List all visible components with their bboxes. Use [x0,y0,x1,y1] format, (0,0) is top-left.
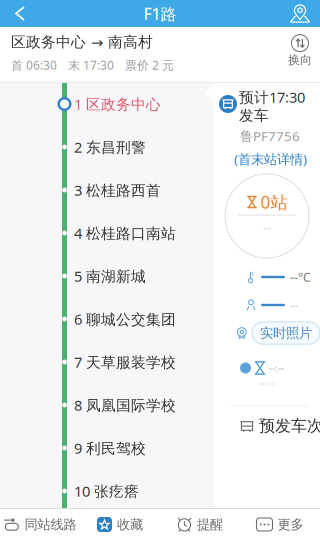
button[interactable]: 8 凤凰国际学校 [74,383,214,426]
staticText: 票价 2 元 [125,57,174,73]
button[interactable]: (首末站详情) [232,148,309,170]
staticText: 预发车次 [259,416,320,436]
staticText: F1路 [143,3,176,24]
button[interactable]: 5 南湖新城 [74,254,214,297]
staticText: 9 利民驾校 [74,438,146,458]
staticText: 末 17:30 [68,57,114,73]
button[interactable]: 9 利民驾校 [74,426,214,469]
staticText: --°C [290,269,311,285]
staticText: --:-- [269,362,284,374]
staticText: 更多 [277,516,303,533]
button[interactable]: 收藏 [80,508,160,541]
staticText: 2 东昌刑警 [74,137,146,157]
button[interactable]: 预发车次 [237,412,320,440]
staticText: 首 06:30 [11,57,57,73]
staticText: (首末站详情) [234,150,307,168]
button[interactable]: 6 聊城公交集团 [74,297,214,340]
button[interactable]: 4 松桂路口南站 [74,211,214,254]
staticText: 换向 [288,53,312,67]
staticText: -- [263,219,271,235]
button[interactable]: 10 张疙瘩 [74,469,214,512]
staticText: 提醒 [197,516,223,533]
staticText: 7 天草服装学校 [74,352,176,372]
button[interactable]: 实时照片 [252,322,320,344]
button[interactable]: 返回 [0,0,40,27]
staticText: 5 南湖新城 [74,266,146,286]
staticText: -- [290,297,298,313]
staticText: 区政务中心 → 南高村 [11,33,153,51]
staticText: --:-- [259,377,274,389]
staticText: 1 区政务中心 [74,94,161,114]
staticText: 收藏 [117,516,143,533]
button[interactable]: 7 天草服装学校 [74,340,214,383]
button[interactable]: 更多 [240,508,320,541]
staticText: 0站 [260,190,287,213]
staticText: 鲁PF7756 [240,127,300,145]
staticText: 预计17:30发车 [239,87,305,125]
button[interactable]: 提醒 [160,508,240,541]
staticText: 10 张疙瘩 [74,481,139,501]
button[interactable]: 换向 [278,33,320,69]
staticText: 实时照片 [260,325,312,341]
staticText: 3 松桂路西首 [74,180,161,200]
button[interactable]: 1 区政务中心 [74,82,214,125]
staticText: 4 松桂路口南站 [74,223,176,243]
staticText: 同站线路 [24,516,76,533]
staticText: 8 凤凰国际学校 [74,395,176,415]
button[interactable]: 2 东昌刑警 [74,125,214,168]
staticText: 6 聊城公交集团 [74,309,176,329]
button[interactable]: 地图 [280,0,320,27]
button[interactable]: 3 松桂路西首 [74,168,214,211]
button[interactable]: 同站线路 [0,508,80,541]
